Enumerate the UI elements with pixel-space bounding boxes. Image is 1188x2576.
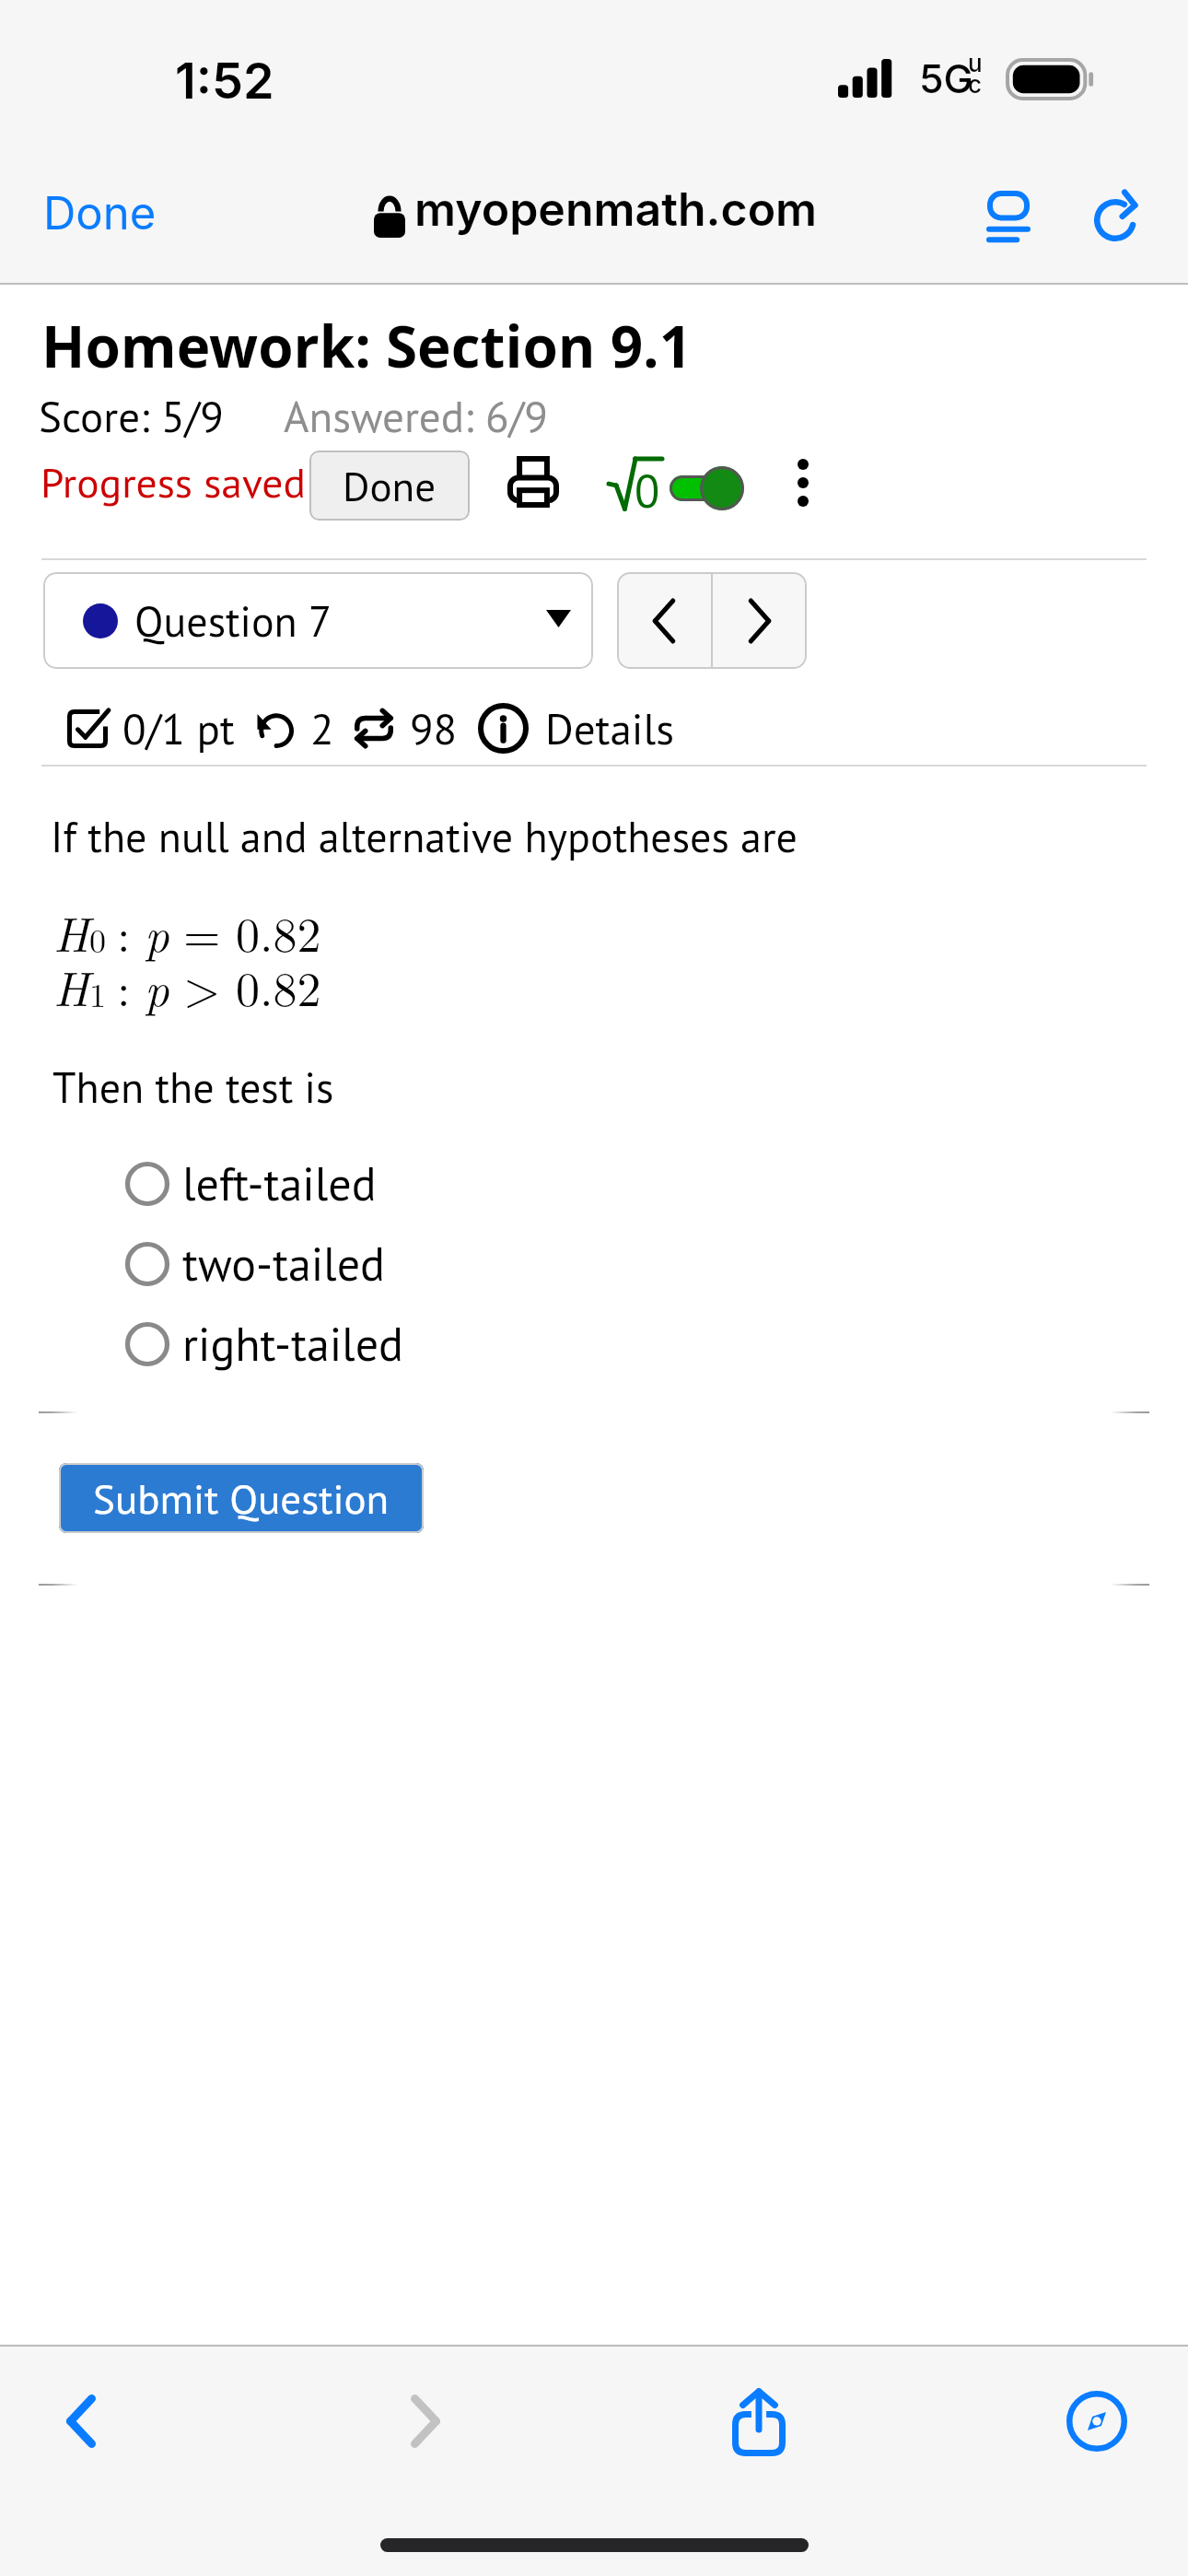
staticText: : xyxy=(117,897,131,966)
staticText: 1:52 xyxy=(175,51,274,111)
button[interactable]: Page settings xyxy=(973,175,1044,256)
staticText: Done xyxy=(43,186,157,240)
button[interactable]: Share xyxy=(716,2373,801,2469)
button[interactable]: Back xyxy=(39,2379,123,2464)
staticText: 5G xyxy=(919,54,973,102)
staticText: Progress saved xyxy=(41,455,306,509)
staticText: 0 xyxy=(635,461,660,514)
staticText: Submit Question xyxy=(93,1471,390,1525)
staticText: = xyxy=(183,897,221,966)
staticText: Details xyxy=(545,700,674,756)
button[interactable]: Submit Question xyxy=(59,1463,424,1533)
button[interactable]: Done xyxy=(309,451,470,521)
staticText: Answered: 6/9 xyxy=(284,388,548,444)
button[interactable]: Toggle math input xyxy=(609,456,747,511)
staticText: 2 xyxy=(310,700,334,756)
button[interactable]: left-tailed xyxy=(123,1153,377,1213)
button[interactable]: Details xyxy=(478,700,674,756)
staticText: Done xyxy=(343,459,437,512)
button[interactable]: Reload page xyxy=(1082,175,1148,256)
staticText: p xyxy=(145,897,169,966)
staticText: > xyxy=(183,952,221,1020)
button[interactable]: Done xyxy=(36,175,164,252)
staticText: 98 xyxy=(410,700,458,756)
staticText: : xyxy=(117,952,131,1020)
staticText: Score: 5/9 xyxy=(39,388,224,444)
staticText: H xyxy=(53,897,89,966)
button[interactable]: Tabs xyxy=(1054,2379,1139,2464)
button[interactable]: Question 7 xyxy=(43,572,593,669)
staticText: myopenmath.com xyxy=(414,181,818,237)
staticText: Question 7 xyxy=(134,593,332,649)
staticText: right-tailed xyxy=(182,1314,403,1374)
button[interactable]: right-tailed xyxy=(123,1314,403,1374)
staticText: left-tailed xyxy=(182,1153,377,1213)
button[interactable]: More options xyxy=(798,459,818,512)
staticText: H xyxy=(53,952,89,1020)
button[interactable]: two-tailed xyxy=(123,1234,385,1294)
button[interactable]: Next question xyxy=(713,572,807,669)
staticText: 0.82 xyxy=(236,952,321,1020)
staticText: p xyxy=(145,952,169,1020)
staticText: 0 xyxy=(89,915,106,962)
staticText: 1 xyxy=(89,969,106,1016)
staticText: u xyxy=(968,49,983,77)
button[interactable]: Forward xyxy=(383,2379,468,2464)
staticText: c xyxy=(968,70,983,99)
staticText: two-tailed xyxy=(182,1234,385,1294)
staticText: Then the test is xyxy=(52,1060,334,1115)
staticText: 0.82 xyxy=(236,897,321,966)
staticText: If the null and alternative hypotheses a… xyxy=(51,809,798,864)
staticText: 0/1 pt xyxy=(122,700,235,756)
button[interactable]: Previous question xyxy=(617,572,711,669)
staticText: Homework: Section 9.1 xyxy=(41,307,693,384)
button[interactable]: Print xyxy=(507,456,561,513)
